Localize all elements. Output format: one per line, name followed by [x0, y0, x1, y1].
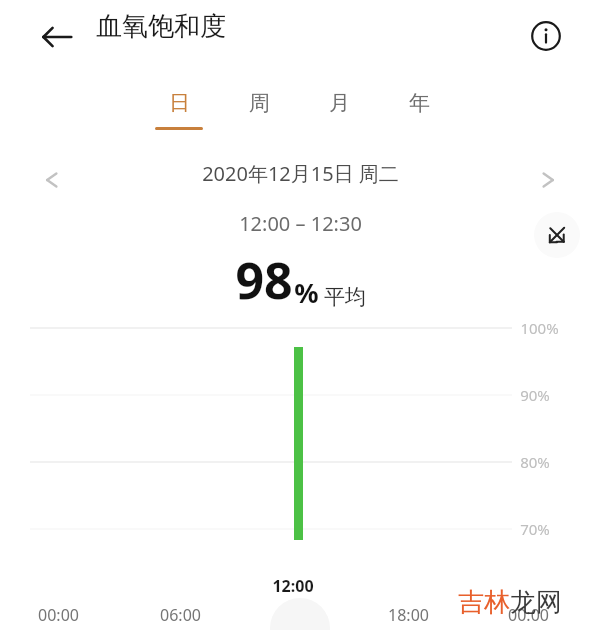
button[interactable]: 月 [305, 90, 373, 142]
staticText: 98 [235, 246, 293, 314]
staticText: 12:00 – 12:30 [239, 210, 362, 237]
staticText: 平均 [324, 284, 366, 310]
staticText: 年 [409, 90, 430, 116]
staticText: 龙网 [510, 586, 562, 619]
staticText: 吉林 [458, 586, 510, 619]
staticText: % [294, 274, 319, 311]
button[interactable]: 年 [385, 90, 453, 142]
staticText: 06:00 [160, 604, 201, 626]
button[interactable]: Information [518, 8, 574, 64]
staticText: 90% [520, 385, 550, 405]
staticText: 周 [249, 90, 270, 116]
button[interactable]: Back [28, 8, 86, 66]
button[interactable]: 周 [225, 90, 293, 142]
button[interactable]: Next day [524, 156, 572, 204]
staticText: 100% [520, 318, 559, 338]
staticText: 月 [329, 90, 350, 116]
button[interactable]: Previous day [28, 156, 76, 204]
staticText: 血氧饱和度 [96, 10, 226, 43]
button[interactable]: 日 [145, 90, 213, 142]
staticText: 80% [520, 452, 550, 472]
staticText: 00:00 [38, 604, 79, 626]
staticText: 日 [169, 90, 190, 116]
staticText: 70% [520, 519, 550, 539]
staticText: 12:00 [272, 575, 314, 597]
staticText: 2020年12月15日 周二 [202, 160, 399, 187]
staticText: 18:00 [388, 604, 429, 626]
staticText: 00:00 [508, 604, 549, 626]
button[interactable]: Expand chart [534, 212, 580, 258]
